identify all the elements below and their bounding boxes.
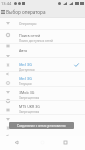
staticText: Поиск доступных сетей	[19, 39, 53, 43]
staticText: 13:44	[1, 1, 12, 6]
staticText: Запрещенная	[19, 96, 40, 100]
staticText: Соединение с сетью установлено	[17, 124, 66, 128]
staticText: life:) 3G	[19, 62, 32, 67]
button[interactable]: Menu	[0, 7, 6, 17]
button[interactable]: Поиск сетей	[0, 29, 85, 43]
staticText: Запрещенная	[19, 110, 40, 114]
button[interactable]: Соединение с сетью установлено	[9, 122, 74, 129]
staticText: Выбор оператора	[6, 9, 46, 15]
button[interactable]: Авто	[0, 44, 85, 58]
button[interactable]: MTS UKR 3G	[0, 100, 85, 114]
button[interactable]: life:) 3G	[0, 72, 85, 86]
staticText: MTS UKR 3G	[19, 104, 40, 109]
button[interactable]: life:) 3G	[0, 58, 85, 72]
staticText: life:) 3G	[19, 76, 32, 81]
staticText: Доступная	[19, 68, 35, 72]
button[interactable]: Back	[10, 136, 23, 148]
staticText: Авто	[19, 48, 28, 53]
button[interactable]: Recents	[59, 136, 72, 148]
staticText: 3Mob 3G	[19, 90, 35, 95]
staticText: Операторы	[19, 22, 37, 26]
button[interactable]: 3Mob 3G	[0, 86, 85, 100]
staticText: Текущая	[19, 82, 32, 86]
staticText: Поиск сетей	[19, 33, 41, 38]
